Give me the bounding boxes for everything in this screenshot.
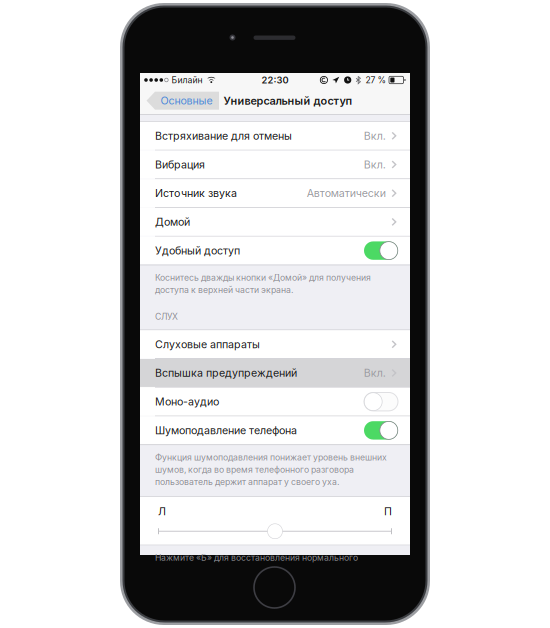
staticText: Билайн (171, 75, 202, 85)
button[interactable]: Моно-аудио (140, 388, 410, 416)
staticText: Вспышка предупреждений (155, 366, 297, 379)
button[interactable]: Основные (146, 92, 219, 110)
staticText: 27 % (365, 75, 386, 85)
button[interactable]: Шумоподавление телефона (140, 416, 410, 444)
staticText: Л (158, 505, 166, 518)
staticText: Автоматически (307, 187, 386, 200)
button[interactable]: Источник звука (140, 179, 410, 207)
staticText: доступа к верхней части экрана. (155, 285, 293, 295)
button[interactable]: Домой (140, 208, 410, 236)
staticText: Вибрация (155, 158, 205, 171)
staticText: Вкл. (364, 129, 386, 142)
staticText: шумов, когда во время телефонного разгов… (155, 464, 354, 475)
button[interactable]: Вспышка предупреждений (140, 359, 410, 387)
staticText: Моно-аудио (155, 395, 219, 408)
button[interactable]: Удобный доступ (140, 237, 410, 265)
button[interactable]: Встряхивание для отмены (140, 122, 410, 150)
staticText: СЛУХ (155, 311, 178, 322)
button[interactable]: Balance (158, 524, 392, 539)
staticText: Удобный доступ (155, 244, 240, 257)
staticText: Источник звука (155, 187, 237, 200)
staticText: пользователь держит аппарат у своего уха… (155, 477, 339, 487)
staticText: Вкл. (364, 158, 386, 171)
staticText: Коснитесь дважды кнопки «Домой» для полу… (155, 272, 371, 283)
staticText: Функция шумоподавления понижает уровень … (155, 452, 387, 463)
staticText: Нажмите «Б» для восстановления нормально… (155, 552, 358, 563)
staticText: П (384, 505, 392, 518)
staticText: Встряхивание для отмены (155, 129, 292, 142)
button[interactable]: Вибрация (140, 150, 410, 178)
staticText: Домой (155, 215, 190, 228)
staticText: Шумоподавление телефона (155, 424, 297, 437)
staticText: 22:30 (261, 74, 288, 86)
staticText: Основные (160, 94, 212, 107)
button[interactable]: Слуховые аппараты (140, 330, 410, 358)
staticText: Универсальный доступ (223, 94, 352, 107)
staticText: Слуховые аппараты (155, 338, 260, 351)
staticText: Вкл. (364, 366, 386, 379)
